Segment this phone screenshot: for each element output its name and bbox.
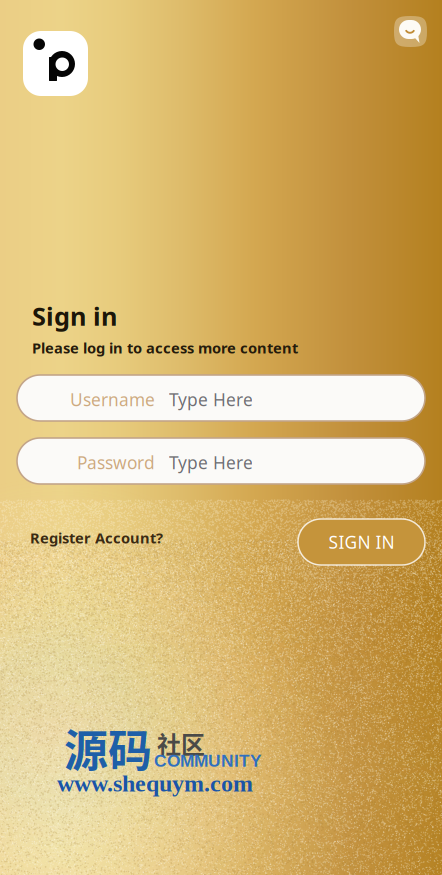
button[interactable]: SIGN IN (298, 519, 425, 565)
staticText: 源码 (64, 716, 152, 780)
button[interactable]: Support chat (394, 16, 427, 47)
button[interactable]: Register Account? (30, 528, 163, 547)
staticText: Type Here (169, 388, 253, 411)
staticText: www.shequym.com (57, 770, 253, 797)
staticText: Please log in to access more content (32, 338, 298, 357)
staticText: 社区 (157, 726, 205, 761)
staticText: SIGN IN (328, 530, 394, 553)
staticText: Sign in (32, 299, 117, 333)
staticText: Username (70, 388, 155, 411)
staticText: Password (77, 451, 155, 474)
staticText: Type Here (169, 451, 253, 474)
staticText: Register Account? (30, 528, 163, 547)
staticText: COMMUNITY (154, 751, 262, 770)
